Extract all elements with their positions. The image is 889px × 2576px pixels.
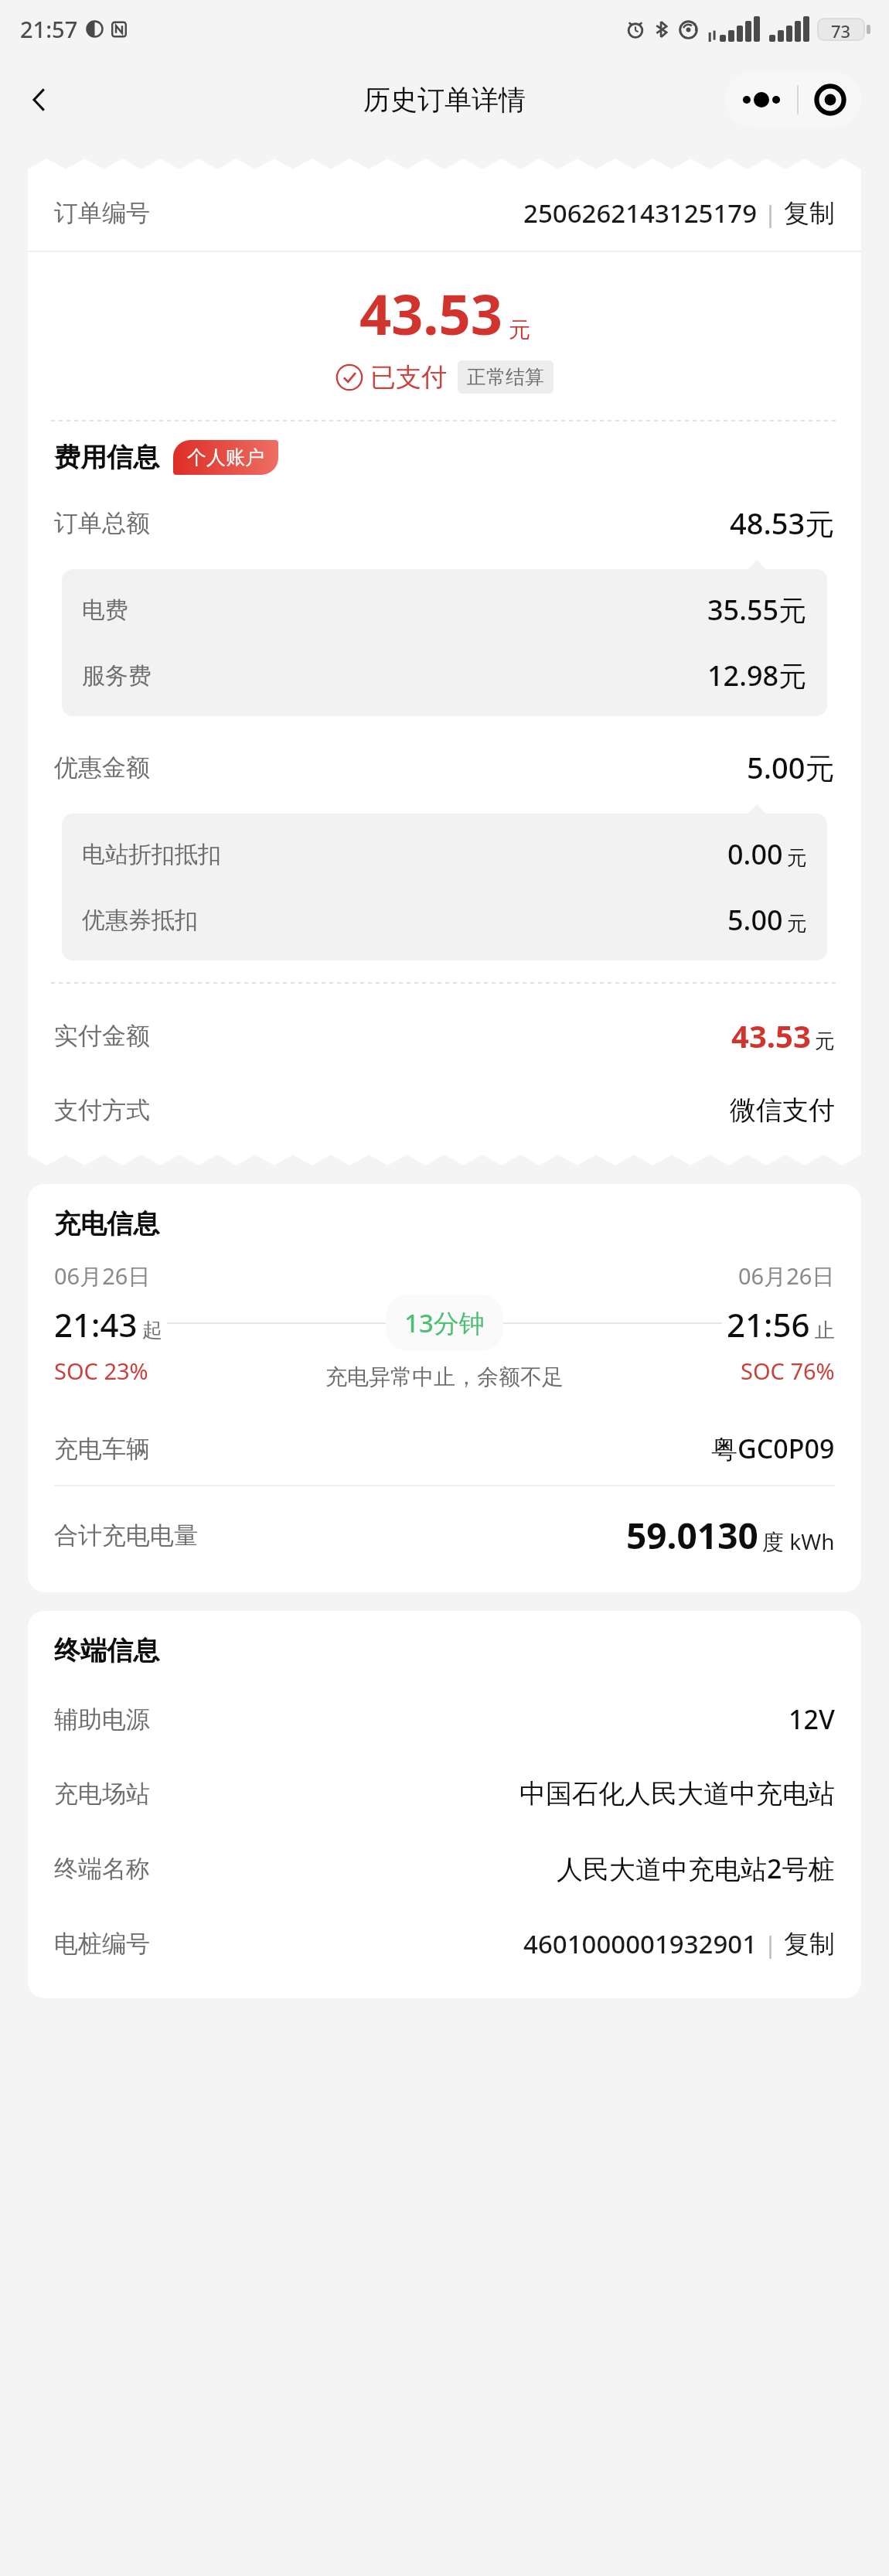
staticText: 复制 [784, 1928, 835, 1960]
staticText: 人民大道中充电站2号桩 [557, 1851, 835, 1886]
staticText: 中国石化人民大道中充电站 [519, 1777, 835, 1810]
staticText: 元 [787, 911, 807, 937]
staticText: 止 [815, 1318, 835, 1343]
staticText: 个人账户 [187, 445, 264, 469]
staticText: 73 [831, 19, 851, 39]
staticText: 实付金额 [54, 1021, 150, 1051]
staticText: 优惠金额 [54, 752, 150, 783]
staticText: 21:56 [727, 1302, 810, 1346]
staticText: 优惠券抵扣 [82, 906, 198, 935]
staticText: 起 [142, 1318, 162, 1343]
staticText: 21:57 [20, 14, 78, 44]
staticText: 4601000001932901 [523, 1926, 758, 1961]
staticText: SOC 76% [741, 1356, 835, 1386]
staticText: 充电车辆 [54, 1434, 150, 1464]
staticText: 充电场站 [54, 1779, 150, 1809]
staticText: 5.00 [727, 901, 783, 939]
staticText: 43.53 [731, 1015, 811, 1056]
staticText: 0.00 [727, 835, 783, 873]
staticText: 06月26日 [54, 1261, 151, 1291]
staticText: 1 [692, 19, 699, 34]
staticText: 粤GC0P09 [711, 1431, 835, 1466]
staticText: 电桩编号 [54, 1929, 150, 1959]
staticText: 48.53元 [730, 503, 835, 543]
staticText: 合计充电电量 [54, 1520, 198, 1551]
staticText: 度 kWh [762, 1527, 835, 1556]
staticText: | [758, 197, 784, 230]
staticText: 21:43 [54, 1302, 138, 1346]
button[interactable]: 电桩编号 [28, 1906, 861, 1981]
button[interactable]: 返回 [11, 70, 70, 129]
staticText: 终端信息 [54, 1634, 159, 1667]
staticText: 5.00元 [747, 747, 835, 787]
staticText: 元 [815, 1029, 835, 1054]
staticText: 终端名称 [54, 1854, 150, 1884]
staticText: 06月26日 [738, 1261, 835, 1291]
staticText: 元 [787, 845, 807, 871]
staticText: 辅助电源 [54, 1704, 150, 1735]
staticText: SOC 23% [54, 1356, 148, 1386]
staticText: 充电信息 [54, 1207, 159, 1240]
staticText: 元 [509, 316, 530, 343]
staticText: 59.0130 [626, 1511, 758, 1560]
staticText: 复制 [784, 197, 835, 230]
staticText: 43.53 [359, 275, 502, 351]
staticText: 正常结算 [467, 365, 544, 389]
staticText: 电站折扣抵扣 [82, 840, 221, 869]
staticText: 历史订单详情 [363, 83, 526, 117]
staticText: 已支付 [370, 361, 447, 394]
button[interactable]: 小程序菜单 [725, 72, 861, 128]
staticText: 12V [789, 1701, 835, 1737]
button[interactable]: 订单编号 [28, 176, 861, 251]
staticText: 支付方式 [54, 1095, 150, 1125]
staticText: 服务费 [82, 661, 152, 691]
staticText: 订单总额 [54, 508, 150, 538]
staticText: 2506262143125179 [523, 196, 758, 230]
staticText: 13分钟 [404, 1305, 485, 1340]
staticText: | [758, 1928, 784, 1960]
staticText: 微信支付 [730, 1094, 835, 1127]
staticText: 12.98元 [707, 657, 807, 694]
staticText: 费用信息 [54, 441, 159, 474]
staticText: 充电异常中止，余额不足 [325, 1363, 564, 1390]
staticText: 订单编号 [54, 198, 150, 228]
staticText: 电费 [82, 595, 128, 625]
staticText: 35.55元 [707, 591, 807, 629]
